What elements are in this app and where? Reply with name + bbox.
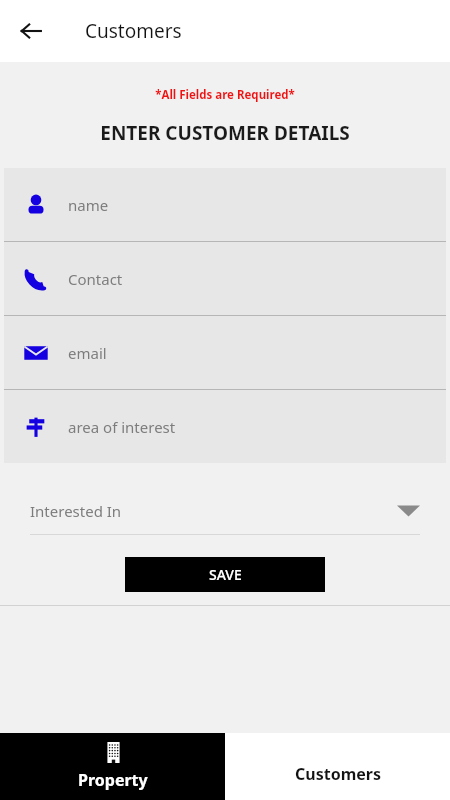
staticText: name [68,195,109,215]
staticText: SAVE [209,565,242,584]
staticText: area of interest [68,417,176,437]
button[interactable]: name [4,168,446,241]
staticText: Property [78,769,148,791]
button[interactable]: Interested In [30,501,420,535]
button[interactable]: Back [10,10,52,52]
staticText: ENTER CUSTOMER DETAILS [0,120,450,146]
button[interactable]: area of interest [4,390,446,463]
button[interactable]: Property [0,733,225,800]
staticText: Interested In [30,501,396,521]
staticText: Customers [85,18,182,44]
button[interactable]: Customers [225,733,450,800]
button[interactable]: email [4,316,446,389]
staticText: *All Fields are Required* [0,87,450,103]
button[interactable]: SAVE [125,557,325,592]
staticText: Contact [68,269,123,289]
staticText: email [68,343,107,363]
staticText: Customers [295,763,381,785]
button[interactable]: Contact [4,242,446,315]
